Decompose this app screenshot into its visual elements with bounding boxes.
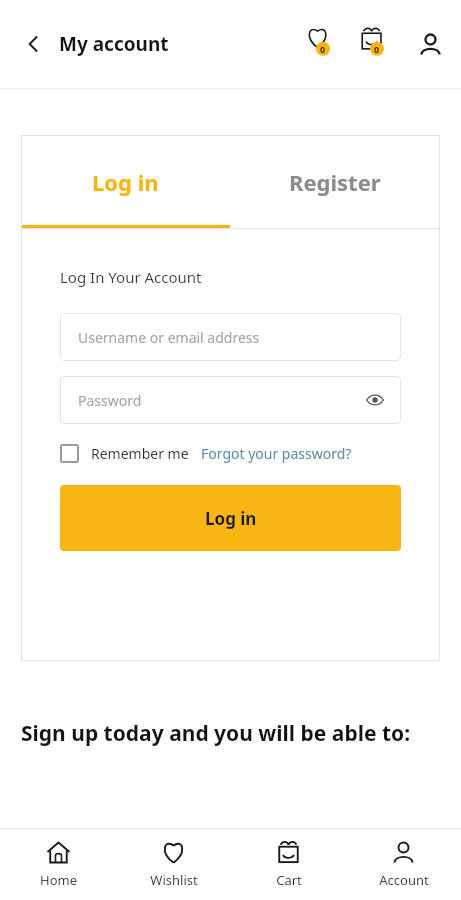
- staticText: Remember me: [91, 444, 189, 463]
- staticText: Username or email address: [78, 328, 260, 347]
- button[interactable]: Password: [60, 376, 401, 424]
- button[interactable]: Wishlist: [303, 24, 343, 64]
- button[interactable]: Account: [411, 25, 449, 63]
- button[interactable]: Cart: [357, 24, 397, 64]
- staticText: Cart: [276, 871, 302, 889]
- staticText: Home: [40, 871, 77, 889]
- staticText: 0: [374, 43, 380, 55]
- button[interactable]: Username or email address: [60, 313, 401, 361]
- other: Show password: [363, 388, 387, 412]
- staticText: Forgot your password?: [201, 444, 352, 463]
- button[interactable]: Wishlist: [116, 829, 231, 900]
- staticText: 0: [320, 43, 326, 55]
- button[interactable]: Remember me: [60, 444, 189, 463]
- staticText: My account: [59, 31, 169, 57]
- button[interactable]: Forgot your password?: [201, 444, 352, 463]
- staticText: Log in: [205, 507, 257, 530]
- button[interactable]: Log in: [60, 485, 401, 551]
- staticText: Register: [289, 167, 381, 197]
- staticText: Wishlist: [150, 871, 198, 889]
- button[interactable]: Log in: [21, 135, 230, 228]
- staticText: Log in: [92, 167, 159, 197]
- staticText: Log In Your Account: [60, 267, 202, 287]
- staticText: Sign up today and you will be able to:: [21, 719, 411, 748]
- button[interactable]: Cart: [231, 829, 346, 900]
- button[interactable]: Back: [14, 24, 54, 64]
- button[interactable]: Register: [230, 135, 440, 228]
- staticText: Password: [78, 391, 142, 410]
- staticText: Account: [379, 871, 429, 889]
- button[interactable]: Account: [346, 829, 461, 900]
- button[interactable]: Home: [0, 829, 116, 900]
